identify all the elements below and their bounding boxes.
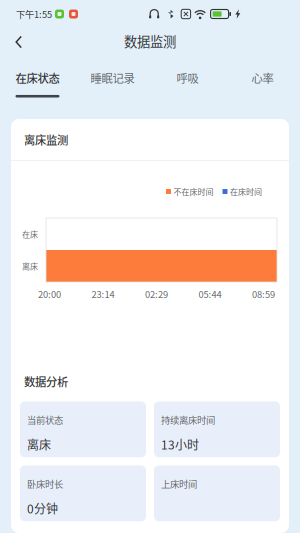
button[interactable]: 呼吸 [150,57,225,97]
button[interactable]: 心率 [225,57,300,97]
staticText: 持续离床时间 [161,413,215,426]
staticText: 卧床时长 [27,477,63,490]
staticText: 上床时间 [161,477,197,490]
staticText: 当前状态 [27,413,63,426]
staticText: 13小时 [161,435,199,453]
staticText: 数据分析 [24,373,68,389]
staticText: 02:29 [145,287,168,301]
staticText: 在床状态 [15,69,59,86]
staticText: 数据监测 [124,31,176,51]
staticText: 05:44 [198,287,221,301]
staticText: 下午1:55 [16,7,52,21]
staticText: 在床 [22,228,38,240]
button[interactable]: 在床状态 [0,57,75,97]
button[interactable]: Back [0,29,36,53]
staticText: 离床 [22,260,38,272]
staticText: 20:00 [38,287,61,301]
button[interactable]: 睡眠记录 [75,57,150,97]
staticText: 离床监测 [24,131,68,148]
staticText: 呼吸 [176,69,198,86]
staticText: 0分钟 [27,499,58,517]
staticText: 睡眠记录 [90,69,134,86]
staticText: 不在床时间 [173,186,213,197]
staticText: 23:14 [91,287,114,301]
staticText: 心率 [251,69,273,86]
staticText: 在床时间 [230,186,262,197]
staticText: 离床 [27,435,51,453]
staticText: 08:59 [252,287,275,301]
